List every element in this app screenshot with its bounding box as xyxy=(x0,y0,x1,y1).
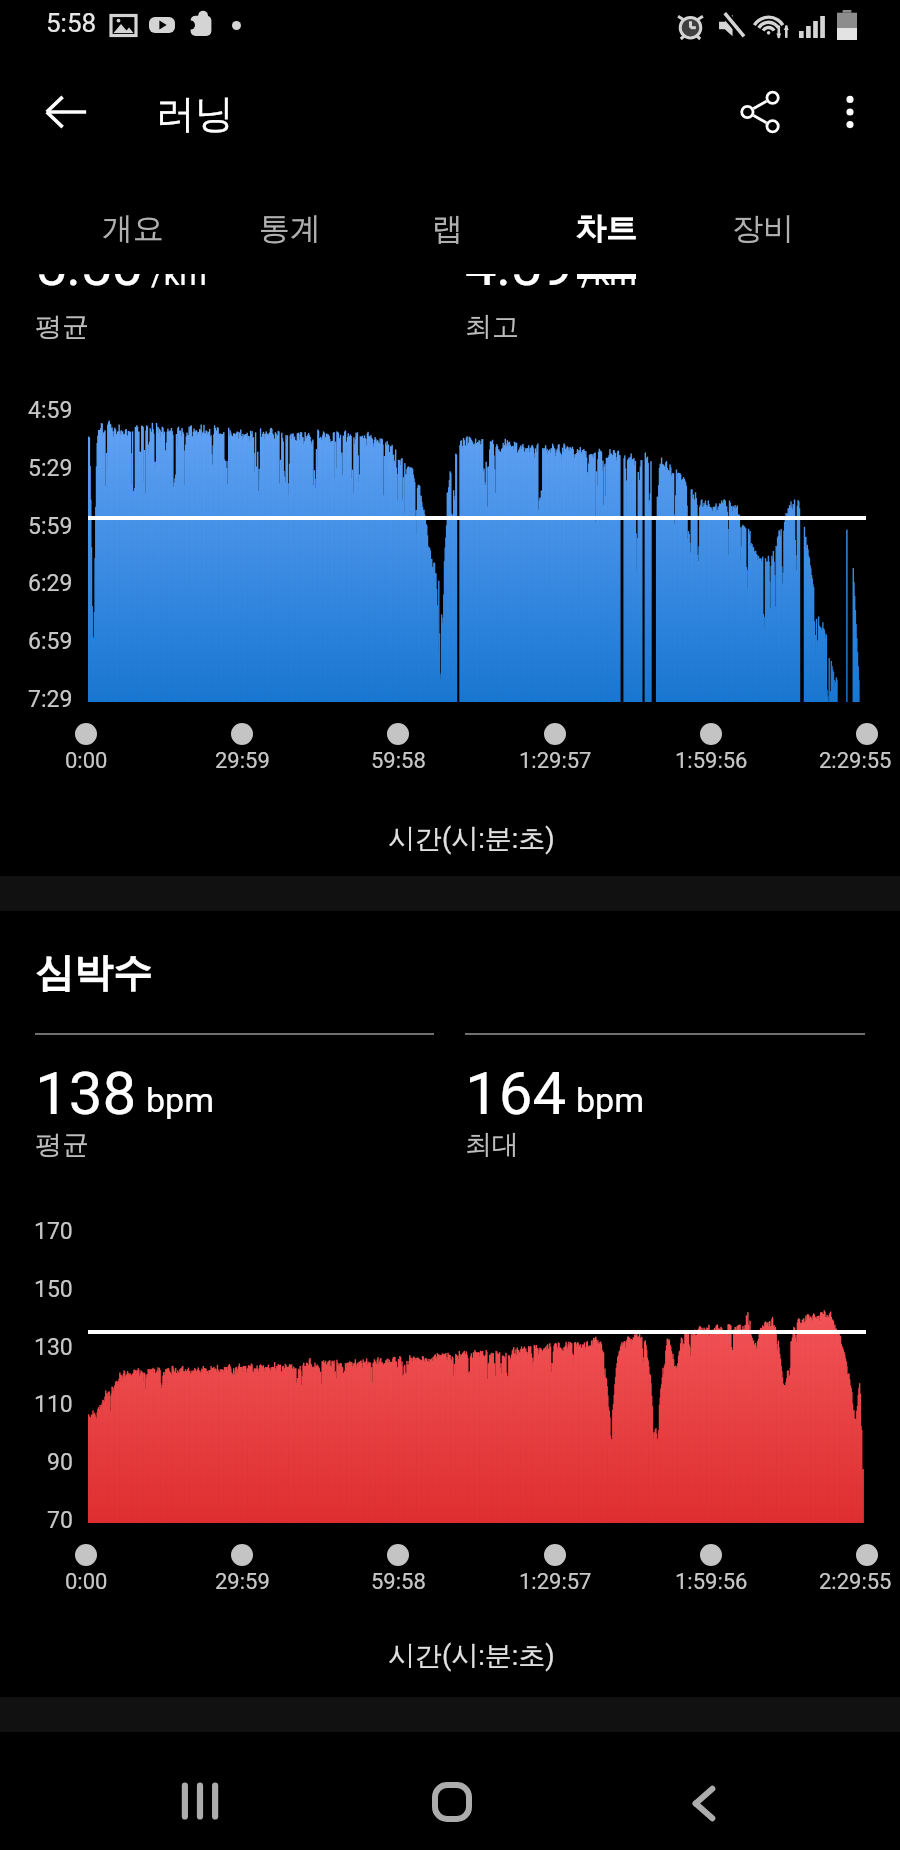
staticText: 130 xyxy=(34,1334,73,1361)
button[interactable]: 랩 xyxy=(369,182,525,274)
staticText: 1:29:57 xyxy=(519,748,592,774)
staticText: 0:00 xyxy=(65,1569,108,1595)
staticText: 5:59 xyxy=(28,513,73,540)
staticText: 5:50 xyxy=(35,274,143,299)
button[interactable]: More options xyxy=(800,62,900,162)
staticText: 170 xyxy=(34,1218,73,1245)
staticText: 평균 xyxy=(35,310,89,344)
button[interactable]: Recent apps xyxy=(128,1742,272,1850)
staticText: 차트 xyxy=(575,209,637,248)
staticText: 최고 xyxy=(465,310,519,344)
button[interactable]: 개요 xyxy=(55,182,211,274)
button[interactable]: 통계 xyxy=(212,182,368,274)
staticText: 70 xyxy=(47,1507,73,1534)
staticText: 150 xyxy=(34,1276,73,1303)
button[interactable]: Share xyxy=(710,62,810,162)
staticText: 0:00 xyxy=(65,748,108,774)
staticText: /km xyxy=(151,274,207,292)
staticText: 1:29:57 xyxy=(519,1569,592,1595)
staticText: 심박수 xyxy=(35,948,152,997)
staticText: 4:59 xyxy=(28,397,73,424)
staticText: 6:29 xyxy=(28,570,73,597)
button[interactable]: Back xyxy=(16,62,116,162)
staticText: 164 xyxy=(465,1058,567,1128)
staticText: 59:58 xyxy=(371,1569,426,1595)
staticText: 5:29 xyxy=(28,455,73,482)
staticText: 최대 xyxy=(465,1128,519,1162)
staticText: 6:59 xyxy=(28,628,73,655)
staticText: 통계 xyxy=(259,209,321,248)
button[interactable]: 장비 xyxy=(685,182,841,274)
button[interactable]: Home xyxy=(380,1743,524,1850)
staticText: 1:59:56 xyxy=(675,1569,748,1595)
staticText: 2:29:55 xyxy=(819,1569,892,1595)
staticText: 4:59 xyxy=(465,274,573,299)
button[interactable]: 차트 xyxy=(528,182,684,274)
staticText: 1:59:56 xyxy=(675,748,748,774)
staticText: 2:29:55 xyxy=(819,748,892,774)
staticText: 개요 xyxy=(102,209,164,248)
staticText: bpm xyxy=(146,1080,214,1120)
staticText: 110 xyxy=(34,1391,73,1418)
staticText: 시간(시:분:초) xyxy=(388,1639,555,1673)
staticText: 시간(시:분:초) xyxy=(388,822,555,856)
staticText: bpm xyxy=(576,1080,644,1120)
staticText: 랩 xyxy=(432,209,463,248)
staticText: /km xyxy=(581,274,637,292)
staticText: 59:58 xyxy=(371,748,426,774)
staticText: 7:29 xyxy=(28,686,73,713)
staticText: 러닝 xyxy=(156,89,234,138)
staticText: 138 xyxy=(35,1058,137,1128)
staticText: 29:59 xyxy=(215,748,270,774)
staticText: 평균 xyxy=(35,1128,89,1162)
staticText: 90 xyxy=(47,1449,73,1476)
button[interactable]: Back xyxy=(632,1744,776,1850)
staticText: 장비 xyxy=(732,209,794,248)
staticText: 5:58 xyxy=(46,8,97,38)
staticText: 29:59 xyxy=(215,1569,270,1595)
